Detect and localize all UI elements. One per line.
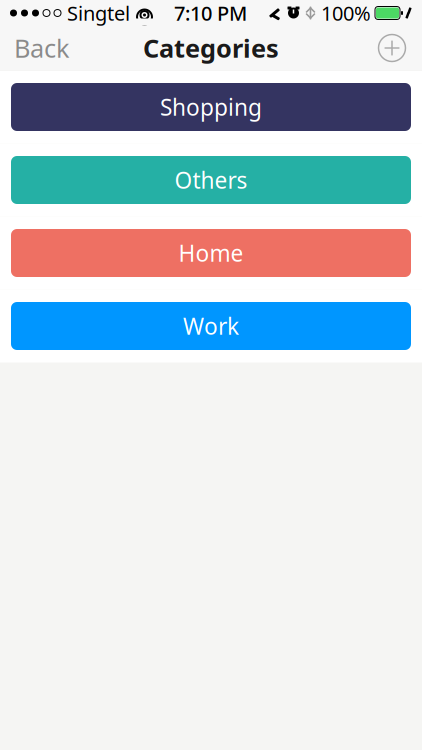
staticText: Others (174, 165, 247, 195)
button[interactable]: Home (0, 216, 422, 289)
button[interactable]: Shopping (0, 70, 422, 143)
staticText: 7:10 PM (174, 0, 247, 26)
staticText: Singtel (67, 0, 130, 26)
button[interactable]: Back (0, 26, 84, 70)
staticText: Shopping (160, 92, 262, 122)
staticText: Home (178, 238, 243, 268)
staticText: Categories (143, 31, 279, 65)
button[interactable]: Work (0, 289, 422, 362)
button[interactable]: Others (0, 143, 422, 216)
staticText: Work (183, 311, 239, 341)
staticText: 100% (321, 0, 371, 26)
staticText: Back (14, 31, 70, 65)
button[interactable]: Add category (370, 26, 414, 70)
